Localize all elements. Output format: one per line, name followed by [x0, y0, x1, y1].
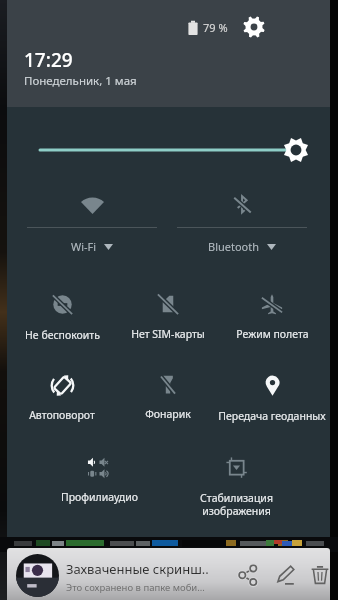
- button[interactable]: Wi-Fi: [27, 190, 157, 256]
- staticText: Профилиаудио: [61, 490, 138, 504]
- staticText: Автоповорот: [29, 408, 95, 422]
- staticText: Нет SIM-карты: [131, 327, 205, 341]
- staticText: Wi-Fi: [71, 239, 97, 254]
- button[interactable]: Профилиаудио: [44, 451, 154, 504]
- button[interactable]: Захваченные скринш..: [7, 548, 330, 600]
- button[interactable]: Автоповорот: [7, 369, 117, 422]
- staticText: Не беспокоить: [25, 328, 100, 342]
- button[interactable]: Стабилизация изображения: [181, 452, 291, 518]
- staticText: Это сохранено в папке моби…: [66, 581, 205, 594]
- staticText: Фонарик: [145, 407, 191, 421]
- staticText: Bluetooth: [208, 239, 260, 254]
- staticText: Передача геоданных: [218, 409, 326, 423]
- button[interactable]: Режим полета: [217, 288, 327, 341]
- staticText: Режим полета: [236, 327, 309, 341]
- button[interactable]: Передача геоданных: [217, 370, 327, 423]
- button[interactable]: Settings: [243, 16, 265, 38]
- staticText: Захваченные скринш..: [66, 560, 209, 578]
- staticText: Стабилизация изображения: [200, 491, 273, 518]
- button[interactable]: Delete: [309, 564, 330, 586]
- button[interactable]: Bluetooth: [177, 190, 307, 256]
- button[interactable]: Фонарик: [113, 368, 223, 421]
- button[interactable]: Не беспокоить: [7, 289, 117, 342]
- button[interactable]: Edit: [274, 564, 296, 586]
- staticText: 17:29: [24, 47, 73, 73]
- staticText: 79 %: [203, 20, 228, 35]
- button[interactable]: Share: [237, 564, 259, 586]
- button[interactable]: Нет SIM-карты: [113, 288, 223, 341]
- staticText: Понедельник, 1 мая: [24, 73, 137, 89]
